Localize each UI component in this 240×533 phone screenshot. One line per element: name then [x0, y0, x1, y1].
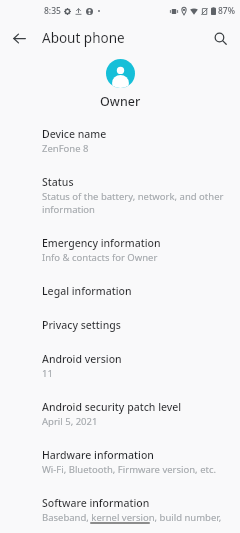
button[interactable]: Hardware information: [0, 443, 240, 481]
staticText: Hardware information: [42, 448, 154, 462]
staticText: Android security patch level: [42, 400, 182, 414]
staticText: Emergency information: [42, 236, 161, 250]
button[interactable]: Software information: [0, 491, 240, 533]
button[interactable]: Status: [0, 170, 240, 221]
staticText: Baseband, kernel version, build number, …: [42, 511, 226, 528]
staticText: Status: [42, 175, 74, 189]
button[interactable]: Emergency information: [0, 231, 240, 269]
staticText: 11: [42, 367, 53, 380]
button[interactable]: Android version: [0, 347, 240, 385]
staticText: Legal information: [42, 284, 132, 298]
button[interactable]: Back: [6, 25, 32, 51]
button[interactable]: Search: [208, 26, 232, 50]
staticText: Software information: [42, 496, 150, 510]
staticText: 87%: [218, 5, 235, 17]
staticText: Android version: [42, 352, 122, 366]
staticText: ZenFone 8: [42, 142, 89, 155]
staticText: Status of the battery, network, and othe…: [42, 190, 226, 216]
staticText: Device name: [42, 127, 107, 141]
staticText: Info & contacts for Owner: [42, 251, 158, 264]
button[interactable]: Privacy settings: [0, 313, 240, 337]
staticText: Wi-Fi, Bluetooth, Firmware version, etc.: [42, 463, 217, 476]
button[interactable]: Android security patch level: [0, 395, 240, 433]
staticText: 8:35: [44, 5, 61, 17]
staticText: About phone: [42, 29, 125, 47]
button[interactable]: Legal information: [0, 279, 240, 303]
staticText: Owner: [100, 93, 141, 110]
staticText: Privacy settings: [42, 318, 121, 332]
button[interactable]: Device name: [0, 122, 240, 160]
staticText: April 5, 2021: [42, 415, 98, 428]
